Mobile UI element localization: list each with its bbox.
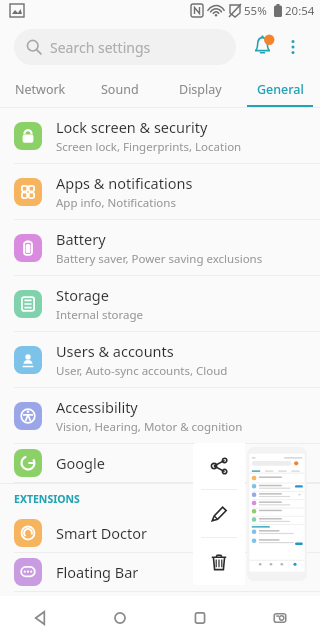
button[interactable]: Delete (193, 538, 245, 585)
staticText: Screen lock, Fingerprints, Location (56, 139, 242, 155)
button[interactable]: Sound (80, 71, 160, 108)
button[interactable]: Edit (193, 490, 245, 537)
staticText: Apps & notifications (56, 173, 193, 193)
staticText: Search settings (50, 38, 151, 57)
button[interactable]: Back (0, 596, 80, 640)
button[interactable]: Lock screen & security (0, 108, 320, 164)
button[interactable]: General (240, 71, 320, 108)
staticText: Sound (101, 81, 139, 98)
staticText: Accessibility (56, 397, 138, 417)
staticText: EXTENSIONS (14, 492, 80, 506)
button[interactable]: Storage (0, 276, 320, 332)
staticText: Floating Bar (56, 562, 139, 582)
button[interactable]: More options (280, 34, 306, 60)
button[interactable]: Smart Doctor (0, 514, 320, 553)
staticText: Storage (56, 285, 109, 305)
staticText: Display (179, 81, 222, 98)
button[interactable]: Notifications (246, 30, 280, 64)
staticText: App info, Notifications (56, 195, 176, 211)
button[interactable]: Home (80, 596, 160, 640)
button[interactable]: Google (0, 444, 320, 483)
staticText: Lock screen & security (56, 117, 208, 137)
button[interactable]: Apps & notifications (0, 164, 320, 220)
button[interactable]: Screenshot (240, 596, 320, 640)
staticText: 20:54 (285, 3, 315, 19)
staticText: Network (15, 81, 66, 98)
staticText: Users & accounts (56, 341, 174, 361)
button[interactable]: Display (160, 71, 240, 108)
staticText: Google (56, 453, 105, 473)
staticText: User, Auto-sync accounts, Cloud (56, 363, 228, 379)
button[interactable]: Users & accounts (0, 332, 320, 388)
staticText: Smart Doctor (56, 523, 147, 543)
staticText: General (257, 81, 304, 98)
button[interactable]: Floating Bar (0, 553, 320, 592)
button[interactable]: Floating Bar toggle (272, 564, 306, 580)
button[interactable]: Share (193, 443, 245, 489)
button[interactable]: Battery (0, 220, 320, 276)
button[interactable]: Network (0, 71, 80, 108)
button[interactable]: Accessibility (0, 388, 320, 444)
staticText: Internal storage (56, 307, 144, 323)
button[interactable]: Screenshot preview (247, 447, 307, 581)
button[interactable]: Recents (160, 596, 240, 640)
staticText: Battery (56, 229, 106, 249)
staticText: 55% (244, 3, 267, 19)
staticText: Vision, Hearing, Motor & cognition (56, 419, 243, 435)
button[interactable]: Search settings (14, 29, 236, 65)
staticText: Battery saver, Power saving exclusions (56, 251, 263, 267)
